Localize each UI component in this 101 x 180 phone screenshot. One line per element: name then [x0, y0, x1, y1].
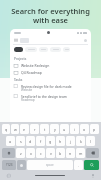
- button[interactable]: m: [76, 148, 85, 158]
- button[interactable]: w: [11, 124, 19, 134]
- button[interactable]: Q4 Roadmap: [14, 69, 87, 76]
- staticText: space: [46, 163, 54, 167]
- button[interactable]: u: [60, 124, 69, 134]
- button[interactable]: [50, 47, 61, 52]
- button[interactable]: b: [56, 148, 65, 158]
- staticText: b: [59, 151, 62, 156]
- staticText: m: [79, 151, 83, 156]
- button[interactable]: Search field: [14, 36, 87, 44]
- button[interactable]: i: [70, 124, 79, 134]
- button[interactable]: n: [66, 148, 75, 158]
- staticText: d: [29, 139, 32, 144]
- button[interactable]: .: [74, 160, 83, 170]
- staticText: Roadmap: [21, 98, 35, 102]
- button[interactable]: Review design file for dark mode: [14, 84, 87, 92]
- button[interactable]: x: [26, 148, 35, 158]
- staticText: y: [54, 127, 56, 132]
- button[interactable]: Language: [6, 173, 11, 178]
- button[interactable]: o: [80, 124, 89, 134]
- staticText: Search for everything with ease: [8, 6, 93, 25]
- button[interactable]: s: [16, 136, 25, 146]
- button[interactable]: Website Redesign: [14, 62, 87, 69]
- button[interactable]: e: [20, 124, 29, 134]
- button[interactable]: p: [90, 124, 99, 134]
- staticText: l: [90, 139, 91, 144]
- button[interactable]: Backspace: [86, 148, 99, 158]
- button[interactable]: v: [46, 148, 55, 158]
- staticText: Q4 Roadmap: [21, 70, 42, 75]
- button[interactable]: Search: [84, 160, 99, 170]
- button[interactable]: ?123: [2, 160, 16, 170]
- button[interactable]: h: [56, 136, 65, 146]
- staticText: k: [80, 139, 82, 144]
- button[interactable]: t: [40, 124, 49, 134]
- button[interactable]: Shift: [2, 148, 15, 158]
- button[interactable]: r: [30, 124, 39, 134]
- staticText: e: [23, 127, 26, 132]
- button[interactable]: Emoji: [17, 160, 26, 170]
- button[interactable]: k: [76, 136, 85, 146]
- staticText: x: [30, 151, 32, 156]
- staticText: Tasks: [14, 78, 23, 82]
- button[interactable]: [39, 47, 48, 52]
- staticText: h: [59, 139, 62, 144]
- staticText: .: [78, 163, 79, 168]
- button[interactable]: q: [2, 124, 10, 134]
- staticText: g: [49, 139, 52, 144]
- staticText: Projects: [14, 57, 27, 61]
- staticText: p: [93, 127, 96, 132]
- staticText: r: [34, 127, 36, 132]
- staticText: v: [50, 151, 52, 156]
- staticText: j: [70, 139, 71, 144]
- button[interactable]: d: [26, 136, 35, 146]
- staticText: c: [40, 151, 42, 156]
- staticText: Review design file for dark mode: [21, 84, 72, 88]
- staticText: Send brief to the design team: [21, 94, 67, 98]
- button[interactable]: j: [66, 136, 75, 146]
- button[interactable]: c: [36, 148, 45, 158]
- staticText: q: [5, 127, 8, 132]
- button[interactable]: l: [86, 136, 95, 146]
- staticText: o: [83, 127, 86, 132]
- staticText: w: [14, 127, 17, 132]
- button[interactable]: g: [46, 136, 55, 146]
- button[interactable]: z: [16, 148, 25, 158]
- button[interactable]: All filter: [14, 47, 23, 52]
- staticText: ?123: [6, 163, 13, 167]
- staticText: f: [40, 139, 42, 144]
- staticText: s: [20, 139, 22, 144]
- staticText: Website: [21, 88, 33, 92]
- button[interactable]: [25, 47, 37, 52]
- button[interactable]: y: [50, 124, 59, 134]
- button[interactable]: Send brief to the design team: [14, 94, 87, 102]
- button[interactable]: Voice input: [90, 173, 95, 178]
- button[interactable]: Space: [27, 160, 73, 170]
- staticText: z: [20, 151, 22, 156]
- staticText: n: [69, 151, 72, 156]
- staticText: Website Redesign: [21, 63, 50, 68]
- button[interactable]: [63, 47, 70, 52]
- staticText: t: [44, 127, 46, 132]
- button[interactable]: f: [36, 136, 45, 146]
- staticText: u: [63, 127, 66, 132]
- staticText: i: [74, 127, 75, 132]
- button[interactable]: a: [6, 136, 15, 146]
- staticText: a: [9, 139, 12, 144]
